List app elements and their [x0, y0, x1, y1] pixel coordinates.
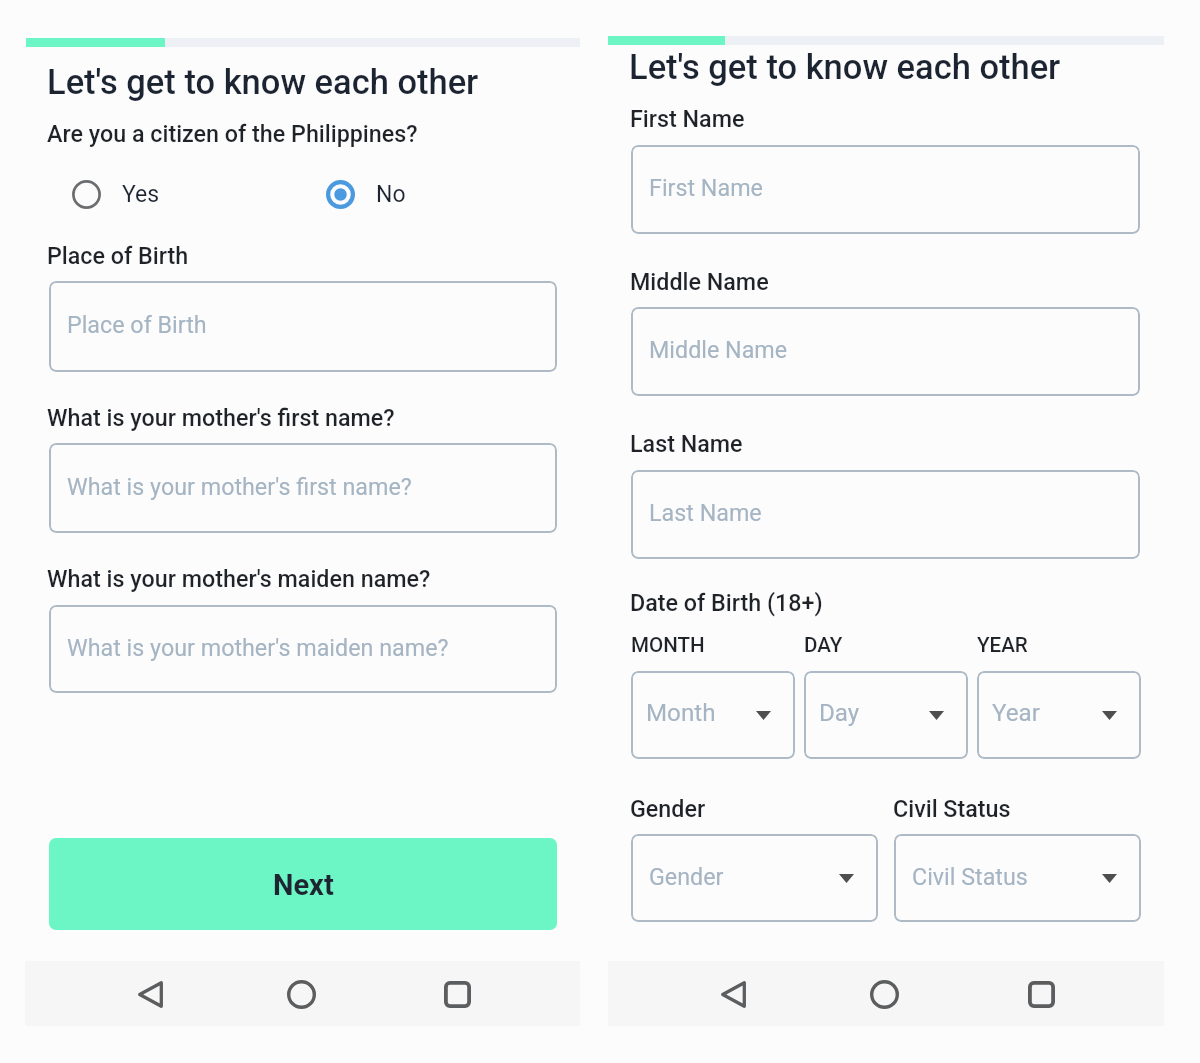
staticText: Gender — [630, 795, 706, 822]
staticText: Are you a citizen of the Philippines? — [47, 120, 418, 147]
staticText: What is your mother's first name? — [67, 473, 412, 500]
button[interactable]: Day — [804, 671, 968, 759]
button[interactable]: Recents — [1013, 966, 1069, 1022]
button[interactable]: Home — [856, 966, 912, 1022]
staticText: Let's get to know each other — [629, 47, 1061, 87]
staticText: First Name — [630, 105, 745, 132]
button[interactable]: Middle Name — [631, 307, 1140, 396]
staticText: Place of Birth — [47, 242, 189, 269]
button[interactable]: Month — [631, 671, 795, 759]
button[interactable]: Year — [977, 671, 1141, 759]
staticText: Civil Status — [912, 863, 1028, 890]
button[interactable]: Back — [705, 966, 761, 1022]
button[interactable]: First Name — [631, 145, 1140, 234]
button[interactable]: Gender — [631, 834, 878, 922]
button[interactable]: What is your mother's first name? — [49, 443, 557, 533]
staticText: Date of Birth (18+) — [630, 589, 823, 616]
button[interactable]: Recents — [429, 966, 485, 1022]
staticText: What is your mother's maiden name? — [47, 565, 431, 592]
button[interactable]: Civil Status — [894, 834, 1141, 922]
staticText: Last Name — [649, 499, 762, 526]
button[interactable]: What is your mother's maiden name? — [49, 605, 557, 693]
staticText: Yes — [122, 181, 160, 208]
staticText: What is your mother's first name? — [47, 404, 395, 431]
staticText: Middle Name — [649, 336, 788, 363]
staticText: First Name — [649, 174, 763, 201]
button[interactable]: Yes — [72, 176, 257, 212]
button[interactable]: No — [326, 176, 456, 212]
button[interactable]: Last Name — [631, 470, 1140, 559]
staticText: Gender — [649, 863, 724, 890]
staticText: YEAR — [977, 633, 1028, 657]
staticText: Year — [992, 699, 1040, 727]
staticText: Civil Status — [893, 795, 1011, 822]
button[interactable]: Back — [122, 966, 178, 1022]
button[interactable]: Home — [273, 966, 329, 1022]
staticText: No — [376, 181, 406, 208]
staticText: MONTH — [631, 633, 705, 657]
staticText: Last Name — [630, 430, 743, 457]
staticText: DAY — [804, 633, 843, 657]
staticText: Let's get to know each other — [47, 62, 479, 102]
staticText: Month — [646, 699, 716, 727]
staticText: Place of Birth — [67, 311, 207, 338]
staticText: Day — [819, 699, 860, 727]
button[interactable]: Place of Birth — [49, 281, 557, 372]
staticText: What is your mother's maiden name? — [67, 634, 449, 661]
staticText: Middle Name — [630, 268, 769, 295]
button[interactable]: Next — [49, 838, 557, 930]
staticText: Next — [273, 868, 334, 902]
